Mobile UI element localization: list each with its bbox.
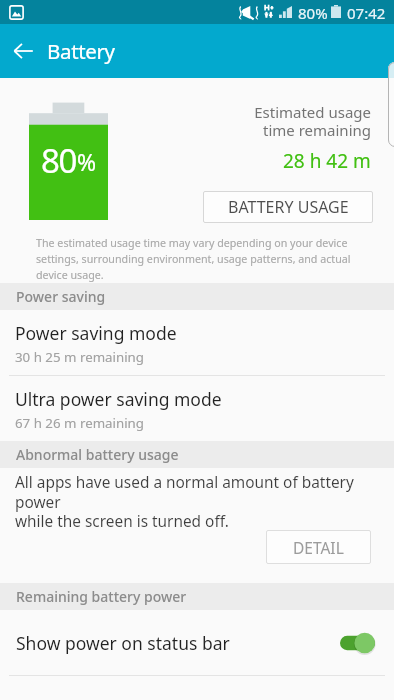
button[interactable]: DETAIL [266,530,371,564]
staticText: BATTERY USAGE [228,196,349,218]
staticText: 28 h 42 m [283,148,371,174]
staticText: 30 h 25 m remaining [15,348,144,366]
staticText: DETAIL [293,537,344,558]
button[interactable]: Remaining battery power [0,583,394,610]
staticText: Abnormal battery usage [16,445,179,464]
button[interactable]: Abnormal battery usage [0,441,394,468]
staticText: 67 h 26 m remaining [15,414,144,432]
button[interactable]: BATTERY USAGE [203,191,373,223]
staticText: 07:42 [347,3,386,23]
staticText: All apps have used a normal amount of ba… [15,472,380,532]
button[interactable]: Ultra power saving mode [0,381,394,441]
staticText: % [77,146,97,177]
staticText: Battery [47,37,115,65]
staticText: Estimated usage time remaining [254,102,371,140]
staticText: Show power on status bar [16,631,340,655]
button[interactable]: Navigate up [0,28,46,74]
staticText: Remaining battery power [16,587,187,606]
staticText: Power saving mode [15,321,177,345]
button[interactable]: Power saving [0,283,394,310]
staticText: Power saving [16,287,106,306]
staticText: Ultra power saving mode [15,387,222,411]
button[interactable]: Show power on status bar [0,610,394,675]
staticText: 80% [298,3,328,23]
button[interactable]: Edge panel handle [388,62,394,147]
staticText: The estimated usage time may vary depend… [36,236,354,282]
button[interactable]: Power saving mode [0,315,394,375]
staticText: 80 [41,138,76,183]
